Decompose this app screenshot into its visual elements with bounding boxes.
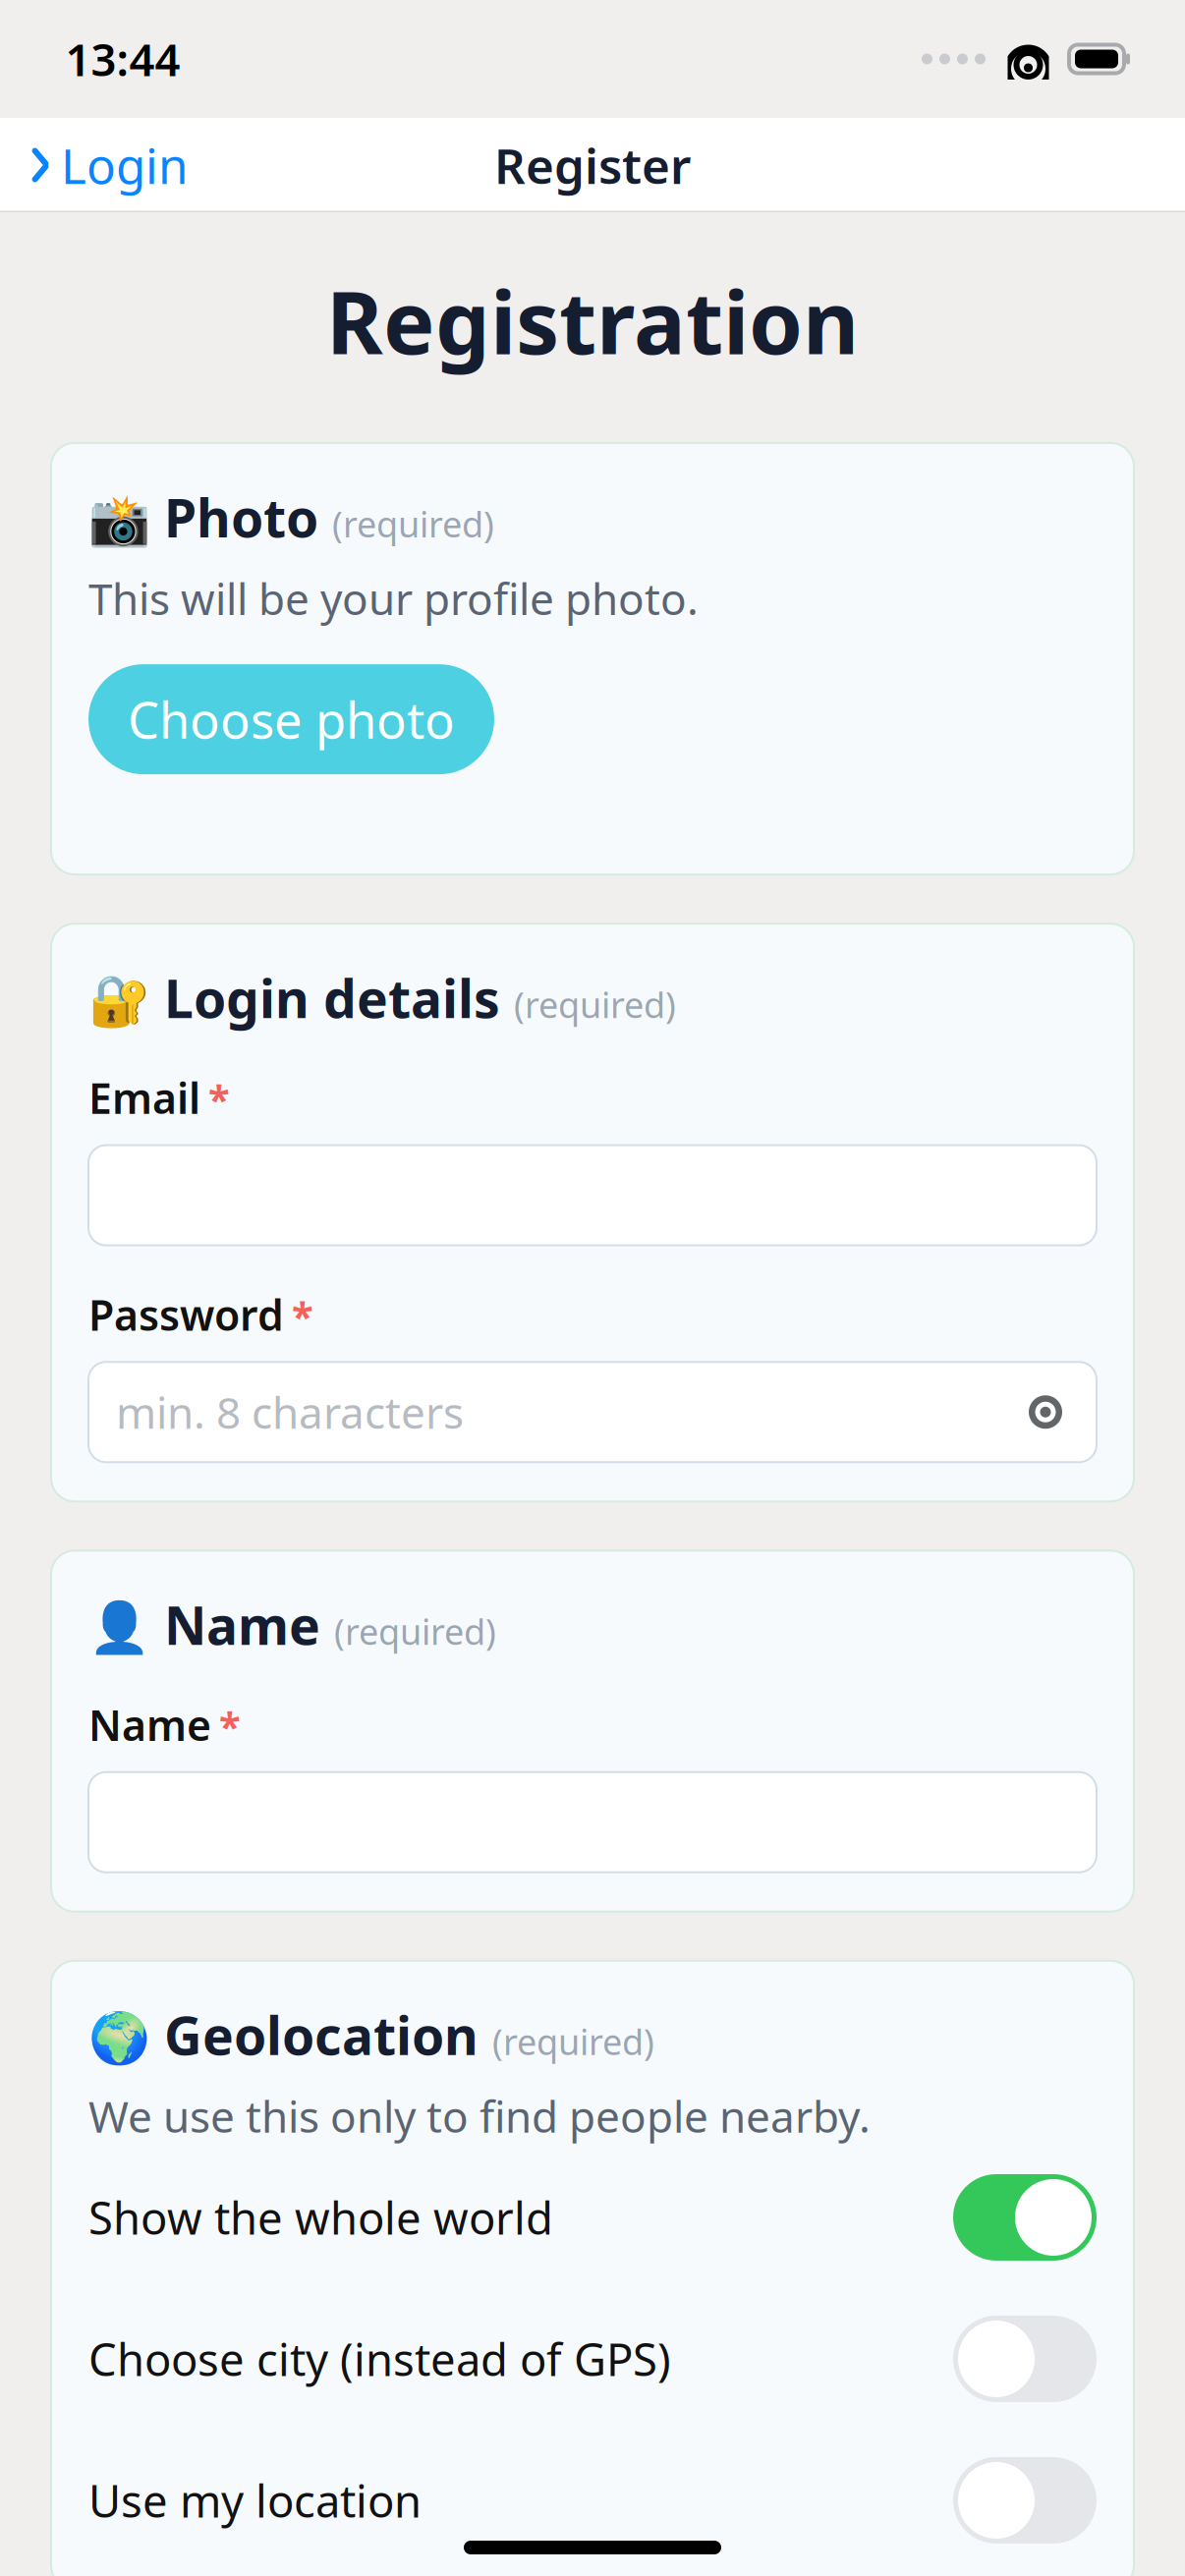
staticText: Register xyxy=(494,133,691,197)
staticText: (required) xyxy=(332,500,494,547)
staticText: Login details xyxy=(164,963,500,1032)
staticText: Show the whole world xyxy=(88,2188,553,2247)
staticText: 🌍 xyxy=(88,2010,150,2067)
staticText: Name xyxy=(88,1697,211,1753)
button[interactable]: Use my location xyxy=(88,2451,1097,2549)
staticText: Choose photo xyxy=(128,686,455,752)
staticText: 🔐 xyxy=(88,973,150,1030)
staticText: 📸 xyxy=(88,492,150,549)
staticText: (required) xyxy=(492,2018,654,2065)
button[interactable]: Choose photo xyxy=(88,664,494,774)
staticText: (required) xyxy=(514,981,676,1028)
staticText: * xyxy=(208,1073,230,1125)
staticText: Use my location xyxy=(88,2471,422,2530)
staticText: 13:44 xyxy=(65,29,180,89)
staticText: Choose city (instead of GPS) xyxy=(88,2329,671,2388)
staticText: Geolocation xyxy=(164,2000,479,2070)
button[interactable]: Choose city (instead of GPS) xyxy=(88,2310,1097,2408)
staticText: * xyxy=(292,1289,313,1342)
staticText: 👤 xyxy=(88,1600,150,1656)
staticText: min. 8 characters xyxy=(116,1383,464,1441)
staticText: Password xyxy=(88,1287,284,1342)
button[interactable]: Login xyxy=(0,119,188,211)
staticText: Photo xyxy=(164,482,318,552)
staticText: This will be your profile photo. xyxy=(88,570,699,627)
staticText: We use this only to find people nearby. xyxy=(88,2087,871,2145)
staticText: (required) xyxy=(334,1608,496,1655)
button[interactable]: Show password xyxy=(1022,1395,1069,1429)
staticText: Name xyxy=(164,1590,320,1659)
staticText: Email xyxy=(88,1070,200,1126)
button[interactable]: Show the whole world xyxy=(88,2168,1097,2267)
staticText: Login xyxy=(61,133,188,197)
staticText: Registration xyxy=(326,263,859,378)
staticText: * xyxy=(219,1700,241,1752)
